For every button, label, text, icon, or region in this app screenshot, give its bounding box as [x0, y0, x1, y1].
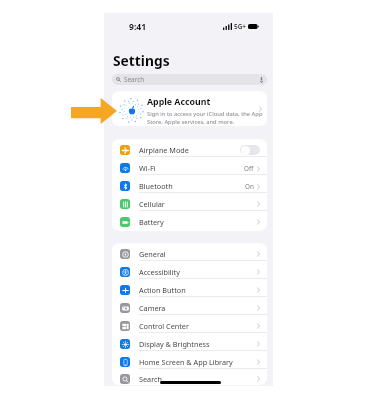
- button[interactable]: Search: [112, 74, 267, 85]
- staticText: Wi-Fi: [139, 163, 156, 173]
- button[interactable]: Display & Brightness: [112, 333, 267, 351]
- button[interactable]: Search: [112, 369, 267, 385]
- staticText: Cellular: [139, 199, 165, 209]
- button[interactable]: Action Button: [112, 279, 267, 297]
- staticText: Accessibility: [139, 267, 180, 277]
- staticText: Search: [124, 75, 145, 84]
- staticText: Bluetooth: [139, 181, 173, 191]
- staticText: Camera: [139, 303, 166, 313]
- staticText: 9:41: [129, 21, 147, 33]
- button[interactable]: General: [112, 243, 267, 261]
- staticText: On: [245, 182, 254, 191]
- staticText: Store, Apple services, and more.: [147, 118, 235, 126]
- staticText: Control Center: [139, 321, 189, 331]
- staticText: Search: [139, 374, 162, 384]
- staticText: 5G+: [234, 22, 246, 31]
- staticText: Settings: [113, 51, 170, 70]
- staticText: Battery: [139, 217, 164, 227]
- staticText: Sign in to access your iCloud data, the …: [147, 110, 263, 118]
- button[interactable]: Accessibility: [112, 261, 267, 279]
- staticText: General: [139, 249, 166, 259]
- staticText: Action Button: [139, 285, 186, 295]
- button[interactable]: Battery: [112, 211, 267, 229]
- staticText: Display & Brightness: [139, 339, 210, 349]
- button[interactable]: Wi-Fi: [112, 157, 267, 175]
- button[interactable]: Apple Account: [112, 91, 267, 126]
- staticText: Apple Account: [147, 96, 211, 108]
- button[interactable]: Cellular: [112, 193, 267, 211]
- button[interactable]: Bluetooth: [112, 175, 267, 193]
- button[interactable]: Camera: [112, 297, 267, 315]
- staticText: Off: [244, 164, 254, 173]
- button[interactable]: Home Screen & App Library: [112, 351, 267, 369]
- staticText: Home Screen & App Library: [139, 357, 233, 367]
- other: Pointer arrow: [71, 98, 117, 124]
- button[interactable]: Control Center: [112, 315, 267, 333]
- button[interactable]: Airplane Mode: [112, 139, 267, 157]
- staticText: Airplane Mode: [139, 145, 189, 155]
